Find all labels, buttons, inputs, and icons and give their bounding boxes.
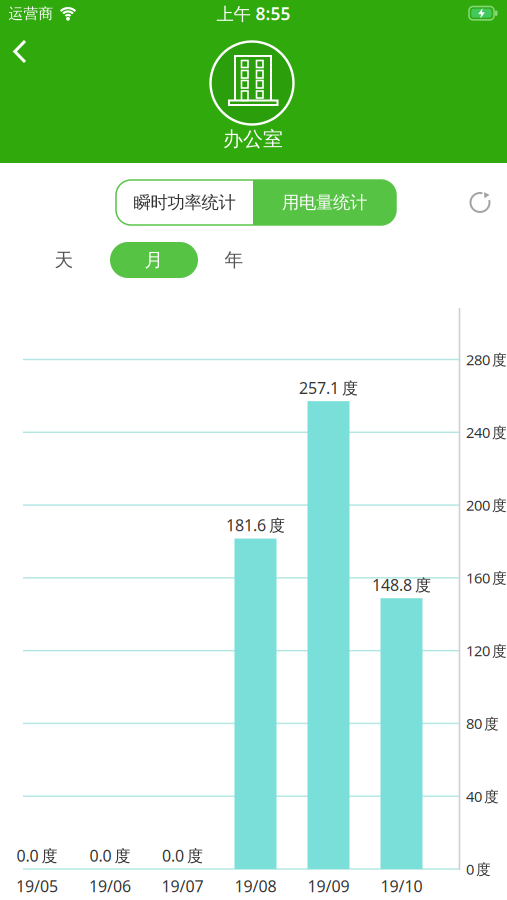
staticText: 19/08 [234, 875, 276, 897]
staticText: 0.0 度 [16, 845, 57, 866]
staticText: 181.6 度 [226, 514, 285, 536]
staticText: 0 度 [466, 859, 491, 879]
button[interactable]: 年 [204, 242, 264, 278]
staticText: 200 度 [466, 495, 507, 515]
staticText: 148.8 度 [372, 574, 431, 595]
staticText: 0.0 度 [162, 845, 203, 866]
staticText: 19/06 [89, 875, 131, 897]
staticText: 19/05 [16, 875, 58, 897]
button[interactable]: Refresh [463, 184, 499, 220]
button[interactable]: 天 [34, 242, 94, 278]
button[interactable]: 月 [110, 242, 198, 278]
button[interactable]: 瞬时功率统计 [116, 180, 253, 225]
staticText: 上午 8:55 [216, 2, 290, 25]
button[interactable]: 用电量统计 [253, 180, 396, 225]
staticText: 月 [144, 248, 163, 271]
staticText: 19/10 [380, 875, 422, 897]
staticText: 257.1 度 [299, 377, 358, 398]
staticText: 用电量统计 [282, 192, 367, 213]
staticText: 19/09 [307, 875, 349, 897]
staticText: 0.0 度 [89, 845, 130, 866]
staticText: 天 [54, 248, 73, 271]
staticText: 160 度 [466, 568, 507, 588]
staticText: 运营商 [8, 4, 53, 22]
staticText: 办公室 [223, 127, 283, 151]
staticText: 240 度 [466, 422, 507, 442]
staticText: 80 度 [466, 714, 499, 733]
staticText: 120 度 [466, 641, 507, 660]
staticText: 280 度 [466, 350, 507, 369]
staticText: 40 度 [466, 786, 499, 806]
staticText: 年 [224, 248, 243, 271]
staticText: 19/07 [161, 875, 203, 897]
staticText: 瞬时功率统计 [133, 192, 235, 213]
button[interactable]: Back [0, 29, 40, 73]
